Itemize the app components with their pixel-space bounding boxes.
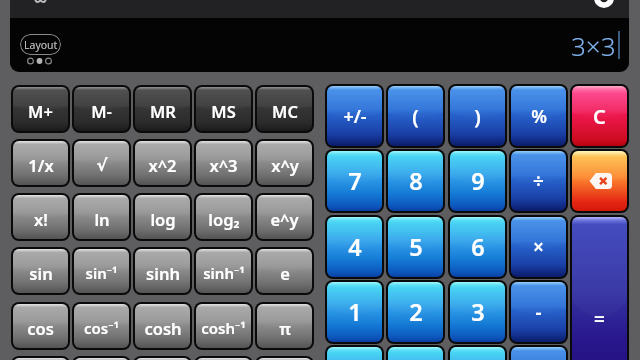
- button[interactable]: (: [388, 86, 443, 146]
- staticText: MS: [211, 100, 236, 122]
- staticText: sinh: [146, 262, 180, 284]
- button[interactable]: 6: [450, 217, 505, 277]
- button[interactable]: Menu: [29, 0, 52, 3]
- staticText: cos: [27, 317, 54, 339]
- button[interactable]: sin⁻¹: [74, 249, 129, 293]
- button[interactable]: 4: [327, 217, 382, 277]
- staticText: 6: [471, 231, 485, 263]
- button[interactable]: 9: [450, 151, 505, 211]
- staticText: cosh⁻¹: [201, 318, 246, 338]
- button[interactable]: sinh: [135, 249, 190, 293]
- button[interactable]: tan⁻¹: [74, 358, 129, 360]
- button[interactable]: cosh: [135, 304, 190, 348]
- staticText: %: [531, 104, 547, 129]
- staticText: +/-: [343, 104, 367, 129]
- staticText: 2: [409, 296, 423, 328]
- button[interactable]: 8: [388, 151, 443, 211]
- button[interactable]: ×: [511, 217, 566, 277]
- button[interactable]: 1/x: [13, 141, 68, 185]
- button[interactable]: sinh⁻¹: [196, 249, 251, 293]
- button[interactable]: ln: [74, 195, 129, 239]
- staticText: -: [535, 299, 542, 325]
- staticText: cosh: [144, 317, 182, 339]
- button[interactable]: ): [450, 86, 505, 146]
- button[interactable]: cos⁻¹: [74, 304, 129, 348]
- button[interactable]: π: [257, 304, 312, 348]
- staticText: 1/x: [28, 154, 54, 176]
- button[interactable]: √: [74, 141, 129, 185]
- staticText: ): [474, 103, 481, 130]
- staticText: 9: [471, 165, 485, 197]
- staticText: 3: [471, 296, 485, 328]
- staticText: 8: [409, 165, 423, 197]
- button[interactable]: 1: [327, 282, 382, 342]
- staticText: x^2: [148, 154, 177, 176]
- staticText: log: [150, 208, 176, 230]
- button[interactable]: 7: [327, 151, 382, 211]
- button[interactable]: x^3: [196, 141, 251, 185]
- staticText: 3×3: [571, 28, 616, 63]
- staticText: e^y: [270, 208, 299, 230]
- button[interactable]: EXP: [450, 347, 505, 360]
- staticText: ln: [94, 208, 110, 230]
- staticText: =: [594, 306, 605, 332]
- staticText: 5: [409, 231, 423, 263]
- staticText: (: [412, 103, 419, 130]
- staticText: MC: [272, 100, 298, 122]
- staticText: 4: [348, 231, 362, 263]
- button[interactable]: 5: [388, 217, 443, 277]
- button[interactable]: Rnd: [257, 358, 312, 360]
- staticText: Layout: [24, 38, 58, 52]
- button[interactable]: Equals: [572, 217, 627, 360]
- button[interactable]: +: [511, 347, 566, 360]
- staticText: sin⁻¹: [85, 263, 118, 283]
- button[interactable]: MR: [135, 87, 190, 131]
- button[interactable]: cos: [13, 304, 68, 348]
- button[interactable]: MS: [196, 87, 251, 131]
- button[interactable]: tanh⁻¹: [196, 358, 251, 360]
- button[interactable]: M+: [13, 87, 68, 131]
- button[interactable]: x^2: [135, 141, 190, 185]
- staticText: cos⁻¹: [84, 318, 119, 338]
- staticText: x!: [34, 208, 48, 230]
- button[interactable]: ÷: [511, 151, 566, 211]
- staticText: ×: [533, 234, 544, 260]
- button[interactable]: 2: [388, 282, 443, 342]
- staticText: M+: [28, 100, 53, 122]
- button[interactable]: 0: [327, 347, 382, 360]
- button[interactable]: C: [572, 86, 627, 146]
- button[interactable]: Record: [594, 0, 614, 8]
- staticText: π: [279, 317, 291, 339]
- button[interactable]: 3: [450, 282, 505, 342]
- button[interactable]: Backspace: [572, 151, 627, 211]
- staticText: x^3: [209, 154, 238, 176]
- button[interactable]: sin: [13, 249, 68, 293]
- button[interactable]: log₂: [196, 195, 251, 239]
- button[interactable]: log: [135, 195, 190, 239]
- button[interactable]: x^y: [257, 141, 312, 185]
- button[interactable]: M-: [74, 87, 129, 131]
- staticText: √: [96, 156, 108, 175]
- button[interactable]: e: [257, 249, 312, 293]
- button[interactable]: MC: [257, 87, 312, 131]
- button[interactable]: tan: [13, 358, 68, 360]
- staticText: ÷: [533, 168, 544, 194]
- button[interactable]: +/-: [327, 86, 382, 146]
- staticText: 1: [348, 296, 362, 328]
- button[interactable]: e^y: [257, 195, 312, 239]
- button[interactable]: Layout: [20, 34, 61, 55]
- button[interactable]: %: [511, 86, 566, 146]
- button[interactable]: cosh⁻¹: [196, 304, 251, 348]
- button[interactable]: x!: [13, 195, 68, 239]
- button[interactable]: tanh: [135, 358, 190, 360]
- staticText: C: [593, 103, 606, 130]
- staticText: e: [280, 262, 290, 284]
- button[interactable]: .: [388, 347, 443, 360]
- staticText: MR: [150, 100, 176, 122]
- staticText: 7: [348, 165, 362, 197]
- staticText: M-: [91, 100, 112, 122]
- button[interactable]: -: [511, 282, 566, 342]
- staticText: x^y: [271, 154, 299, 176]
- staticText: sinh⁻¹: [203, 263, 245, 283]
- staticText: sin: [29, 262, 53, 284]
